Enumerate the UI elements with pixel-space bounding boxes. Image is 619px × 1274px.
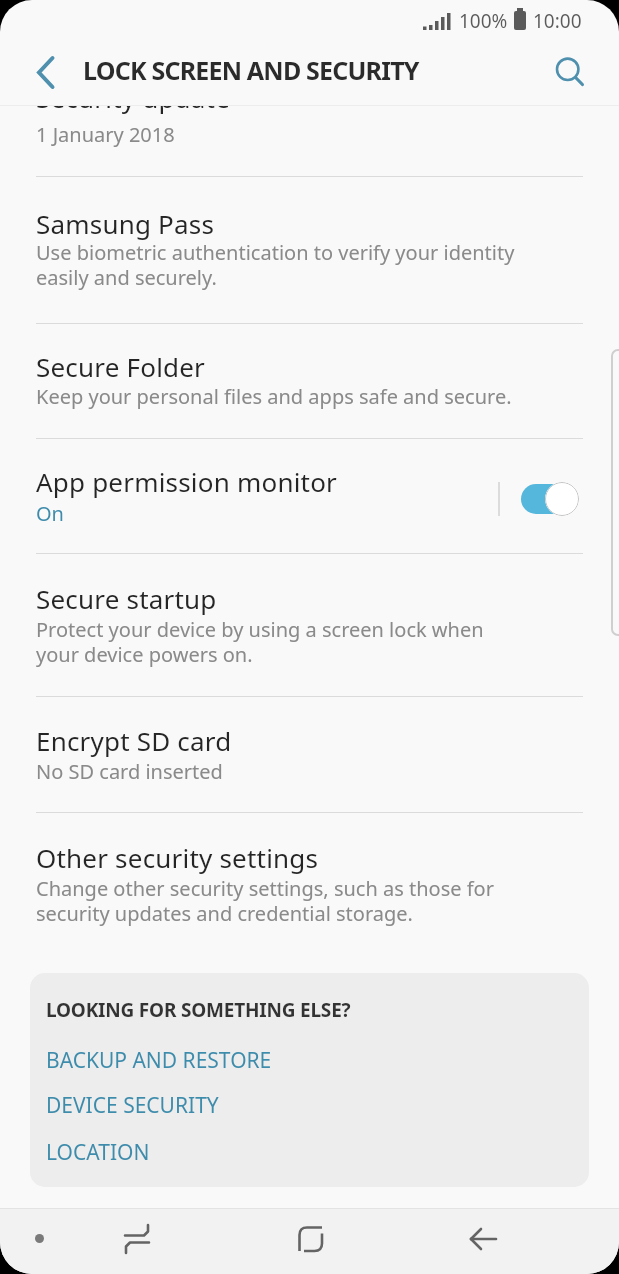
staticText: Security update xyxy=(36,106,231,115)
button[interactable] xyxy=(456,1211,512,1267)
button[interactable]: Secure startup xyxy=(0,554,619,696)
staticText: Secure Folder xyxy=(36,349,206,384)
staticText: No SD card inserted xyxy=(36,758,223,785)
button[interactable] xyxy=(110,1211,166,1267)
staticText: Use biometric authentication to verify y… xyxy=(36,239,515,291)
staticText: Secure startup xyxy=(36,581,217,616)
button[interactable]: Secure Folder xyxy=(0,324,619,437)
staticText: 10:00 xyxy=(533,8,582,34)
button[interactable] xyxy=(33,1232,47,1246)
button[interactable]: Samsung Pass xyxy=(0,177,619,323)
staticText: On xyxy=(36,500,64,527)
staticText: LOCATION xyxy=(46,1138,150,1167)
staticText: LOOKING FOR SOMETHING ELSE? xyxy=(46,997,351,1023)
button[interactable]: Other security settings xyxy=(0,813,619,958)
staticText: Encrypt SD card xyxy=(36,723,232,758)
button[interactable] xyxy=(521,484,577,514)
staticText: 1 January 2018 xyxy=(36,121,175,148)
staticText: Protect your device by using a screen lo… xyxy=(36,616,484,668)
staticText: Other security settings xyxy=(36,840,319,875)
button[interactable]: Encrypt SD card xyxy=(0,697,619,812)
button[interactable] xyxy=(539,42,597,100)
staticText: BACKUP AND RESTORE xyxy=(46,1046,272,1075)
staticText: LOCK SCREEN AND SECURITY xyxy=(83,53,419,87)
button[interactable]: DEVICE SECURITY xyxy=(46,1091,219,1121)
staticText: DEVICE SECURITY xyxy=(46,1091,219,1120)
button[interactable]: BACKUP AND RESTORE xyxy=(46,1046,272,1076)
button[interactable]: App permission monitor xyxy=(0,439,619,553)
staticText: Samsung Pass xyxy=(36,206,215,241)
button[interactable] xyxy=(282,1211,338,1267)
button[interactable]: Security update xyxy=(0,106,619,176)
staticText: App permission monitor xyxy=(36,464,338,499)
button[interactable]: LOCATION xyxy=(46,1138,150,1168)
staticText: 100% xyxy=(459,8,508,34)
staticText: Change other security settings, such as … xyxy=(36,875,494,927)
button[interactable] xyxy=(18,45,70,99)
staticText: Keep your personal files and apps safe a… xyxy=(36,383,512,410)
